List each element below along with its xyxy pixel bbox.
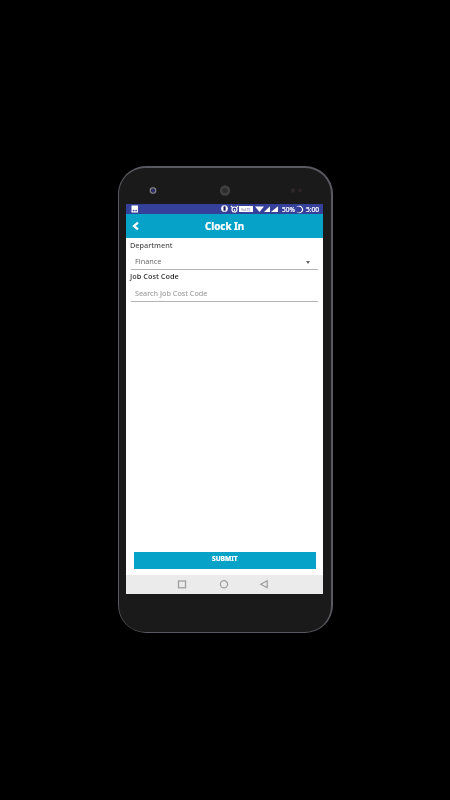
staticText: Department [130,240,173,250]
staticText: 50% [282,205,296,214]
staticText: 5:00 [306,205,320,214]
button[interactable]: SUBMIT [134,552,316,569]
staticText: Search Job Cost Code [135,288,208,298]
button[interactable]: Search Job Cost Code [131,284,318,302]
staticText: Job Cost Code [130,271,179,281]
staticText: Clock In [205,220,245,233]
button[interactable]: Back [254,575,274,594]
button[interactable]: Back [129,219,143,233]
button[interactable]: Home [214,575,234,594]
staticText: SUBMIT [212,554,238,563]
staticText: Finance [135,256,162,266]
button[interactable]: Finance [131,252,318,270]
staticText: VoLTE [241,207,251,212]
button[interactable]: Recent apps [172,575,192,594]
